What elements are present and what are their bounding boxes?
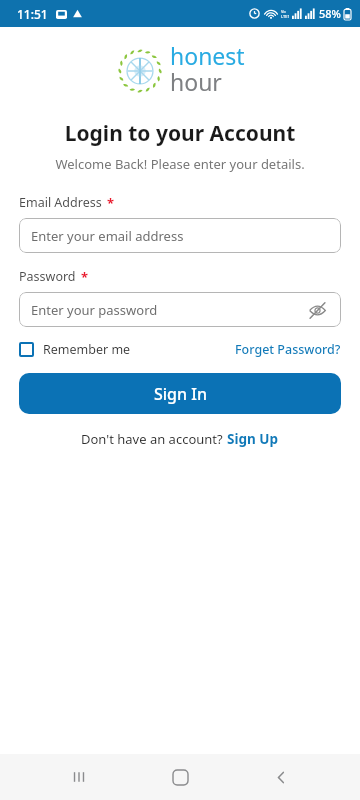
staticText: Sign In [154,383,207,405]
staticText: Enter your password [31,301,158,319]
button[interactable]: Sign In [19,373,341,414]
button[interactable]: Remember me [19,339,131,360]
staticText: Remember me [43,341,131,358]
staticText: 58% [319,6,341,21]
staticText: Sign Up [227,430,279,448]
staticText: Vo LTE1 [281,9,290,19]
staticText: Don't have an account? [81,430,227,448]
button[interactable]: Recents [57,755,101,799]
staticText: Email Address [19,194,102,211]
staticText: * [81,268,89,286]
button[interactable]: Forget Password? [235,339,341,360]
staticText: * [107,194,115,212]
staticText: honest [170,40,245,71]
staticText: Forget Password? [235,341,341,358]
staticText: Login to your Account [0,119,360,148]
button[interactable]: Back [259,755,303,799]
staticText: Welcome Back! Please enter your details. [0,155,360,173]
button[interactable]: Enter your email address [19,218,341,253]
button[interactable]: Home [158,755,202,799]
staticText: Password [19,268,76,285]
staticText: Enter your email address [31,227,184,245]
staticText: hour [170,66,222,97]
button[interactable]: Show password [305,298,329,322]
staticText: 11:51 [17,6,48,22]
button[interactable]: Sign Up [227,430,279,448]
button[interactable]: Enter your password [19,292,341,327]
